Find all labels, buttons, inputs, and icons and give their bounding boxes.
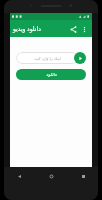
- button[interactable]: لينك را وارد كنيد: [16, 52, 78, 64]
- staticText: لينك را وارد كنيد: [34, 56, 61, 61]
- button[interactable]: More options: [79, 24, 89, 34]
- button[interactable]: دانلود: [16, 69, 86, 80]
- staticText: دانلود: [46, 72, 57, 77]
- button[interactable]: Home: [46, 171, 56, 181]
- button[interactable]: Share: [67, 23, 79, 35]
- button[interactable]: Recent apps: [78, 171, 88, 181]
- button[interactable]: Back: [14, 171, 24, 181]
- button[interactable]: Go: [74, 52, 86, 64]
- staticText: دانلود ويديو: [13, 25, 41, 33]
